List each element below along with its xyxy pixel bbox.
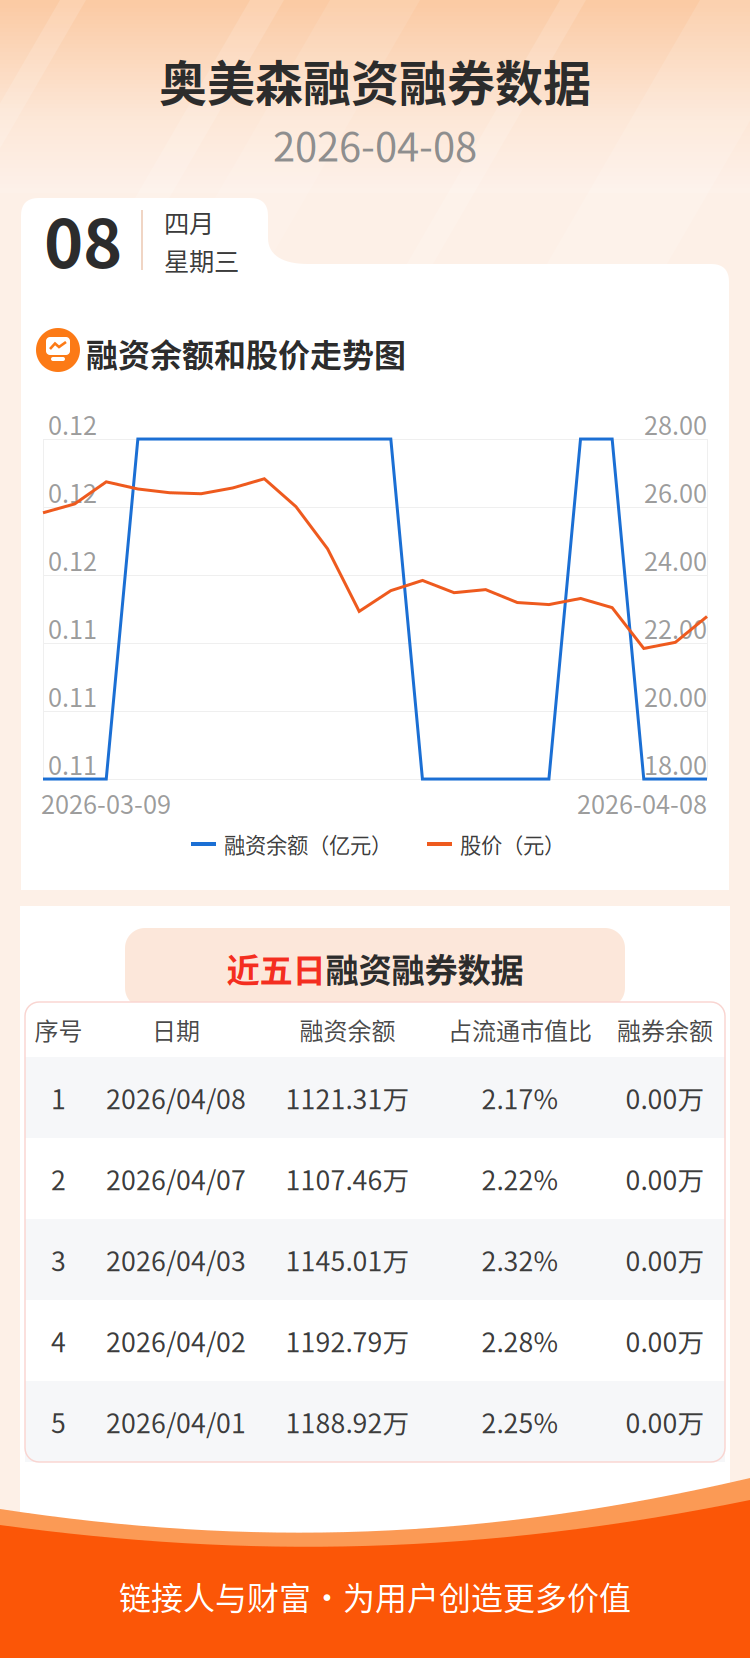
staticText: 链接人与财富·为用户创造更多价值 xyxy=(119,1573,631,1619)
staticText: 股价（元） xyxy=(460,829,565,859)
staticText: 序号 xyxy=(34,1012,82,1047)
staticText: 1121.31万 xyxy=(285,1078,409,1117)
staticText: 0.00万 xyxy=(625,1321,704,1360)
staticText: 融券余额 xyxy=(617,1012,713,1047)
staticText: 2.32% xyxy=(481,1240,558,1279)
staticText: 2026-04-08 xyxy=(577,785,707,821)
staticText: 08 xyxy=(44,191,122,287)
staticText: 2 xyxy=(51,1159,66,1198)
staticText: 星期三 xyxy=(164,242,239,278)
staticText: 5 xyxy=(51,1402,66,1441)
staticText: 融资余额和股价走势图 xyxy=(86,330,406,376)
staticText: 0.11 xyxy=(48,678,97,714)
staticText: 3 xyxy=(51,1240,66,1279)
staticText: 融资余额（亿元） xyxy=(224,829,392,859)
staticText: 0.12 xyxy=(48,542,97,578)
staticText: 2026/04/02 xyxy=(106,1321,246,1360)
staticText: 2026-03-09 xyxy=(41,785,171,821)
staticText: 日期 xyxy=(152,1012,200,1047)
staticText: 近五日 xyxy=(226,944,325,992)
staticText: 2.25% xyxy=(481,1402,558,1441)
staticText: 4 xyxy=(51,1321,66,1360)
staticText: 24.00 xyxy=(644,542,707,578)
staticText: 2026/04/07 xyxy=(106,1159,246,1198)
staticText: 占流通市值比 xyxy=(448,1012,592,1047)
staticText: 融资余额 xyxy=(299,1012,395,1047)
staticText: 2.28% xyxy=(481,1321,558,1360)
staticText: 0.00万 xyxy=(625,1240,704,1279)
staticText: 0.00万 xyxy=(625,1159,704,1198)
staticText: 1 xyxy=(51,1078,66,1117)
staticText: 18.00 xyxy=(644,746,707,782)
staticText: 1188.92万 xyxy=(285,1402,409,1441)
staticText: 0.00万 xyxy=(625,1402,704,1441)
staticText: 22.00 xyxy=(644,610,707,646)
staticText: 融资融券数据 xyxy=(325,944,523,992)
staticText: 0.00万 xyxy=(625,1078,704,1117)
staticText: 奥美森融资融券数据 xyxy=(159,45,591,115)
staticText: 1145.01万 xyxy=(285,1240,409,1279)
staticText: 0.12 xyxy=(48,406,97,442)
staticText: 2026/04/03 xyxy=(106,1240,246,1279)
staticText: 2026/04/01 xyxy=(106,1402,246,1441)
staticText: 2.17% xyxy=(481,1078,558,1117)
staticText: 20.00 xyxy=(644,678,707,714)
staticText: 1192.79万 xyxy=(285,1321,409,1360)
staticText: 四月 xyxy=(164,204,214,240)
staticText: 28.00 xyxy=(644,406,707,442)
staticText: 0.12 xyxy=(48,474,97,510)
staticText: 1107.46万 xyxy=(285,1159,409,1198)
staticText: 2026-04-08 xyxy=(273,115,477,173)
staticText: 0.11 xyxy=(48,610,97,646)
staticText: 0.11 xyxy=(48,746,97,782)
staticText: 2026/04/08 xyxy=(106,1078,246,1117)
staticText: 2.22% xyxy=(481,1159,558,1198)
staticText: 26.00 xyxy=(644,474,707,510)
